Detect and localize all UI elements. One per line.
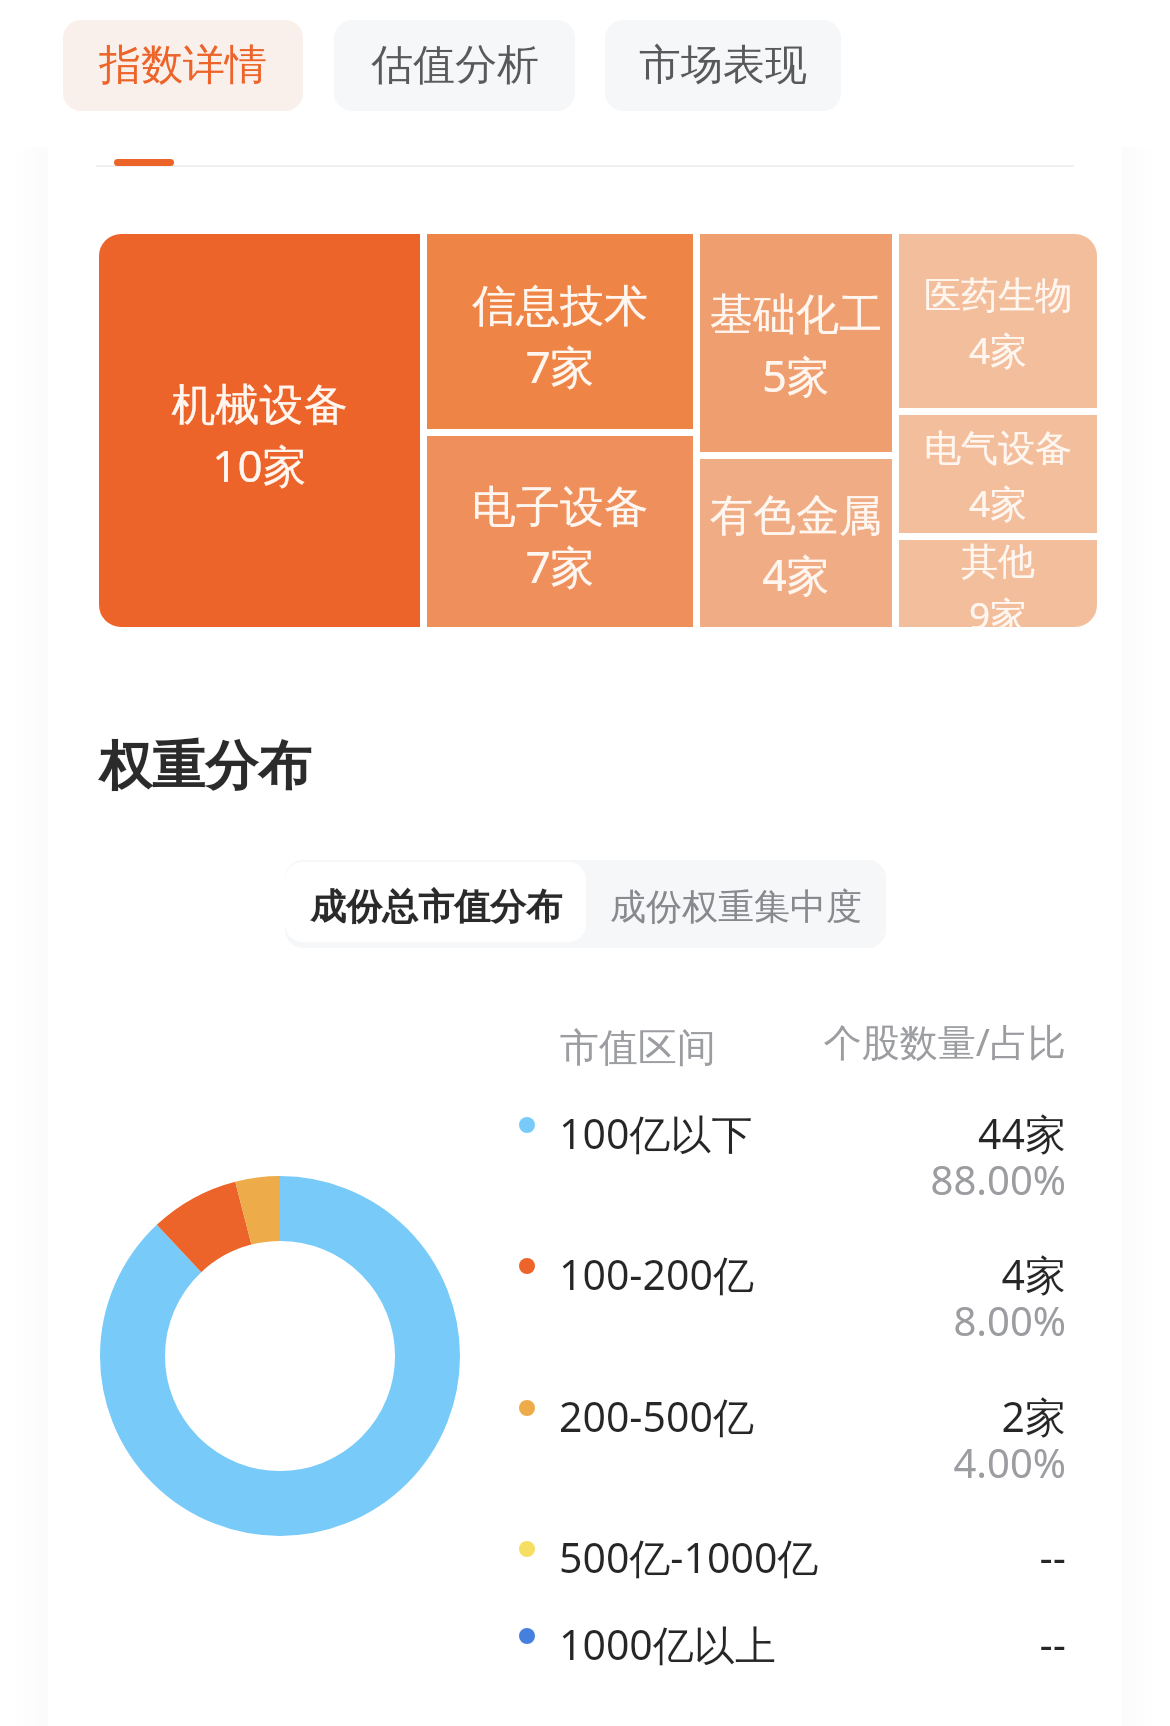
staticText: 4.00%	[746, 1435, 1066, 1489]
button[interactable]: 估值分析	[334, 20, 575, 111]
staticText: 4家	[746, 1246, 1066, 1302]
button[interactable]: 成份权重集中度	[586, 862, 886, 942]
staticText: 4家	[899, 477, 1097, 528]
staticText: --	[746, 1616, 1066, 1672]
staticText: 7家	[427, 536, 693, 596]
button[interactable]	[508, 1246, 1074, 1356]
staticText: 成份权重集中度	[610, 884, 862, 929]
staticText: 200-500亿	[559, 1388, 754, 1444]
button[interactable]: 电子设备	[427, 436, 693, 627]
staticText: 成份总市值分布	[310, 884, 562, 929]
staticText: 4家	[899, 324, 1097, 375]
staticText: 88.00%	[746, 1152, 1066, 1206]
staticText: 100-200亿	[559, 1246, 754, 1302]
button[interactable]: 市场表现	[605, 20, 841, 111]
staticText: 2家	[746, 1388, 1066, 1444]
staticText: 基础化工	[700, 288, 892, 342]
staticText: 权重分布	[99, 733, 311, 800]
staticText: --	[746, 1529, 1066, 1585]
staticText: 电子设备	[427, 480, 693, 535]
staticText: 500亿-1000亿	[559, 1529, 819, 1585]
staticText: 指数详情	[99, 39, 267, 92]
staticText: 10家	[99, 435, 420, 495]
button[interactable]: 电气设备	[899, 415, 1097, 533]
other: 成份总市值分布饼图	[100, 1176, 460, 1536]
button[interactable]: 成份总市值分布	[285, 862, 586, 942]
button[interactable]	[508, 1388, 1074, 1498]
staticText: 市场表现	[639, 39, 807, 92]
staticText: 8.00%	[746, 1293, 1066, 1347]
button[interactable]: 基础化工	[700, 234, 892, 452]
staticText: 5家	[700, 346, 892, 405]
staticText: 机械设备	[99, 378, 420, 433]
staticText: 1000亿以上	[559, 1616, 776, 1672]
button[interactable]	[508, 1616, 1074, 1676]
staticText: 44家	[746, 1105, 1066, 1161]
button[interactable]: 指数详情	[63, 20, 303, 111]
staticText: 9家	[899, 589, 1097, 627]
staticText: 4家	[700, 545, 892, 604]
staticText: 市值区间	[560, 1023, 716, 1072]
button[interactable]: 机械设备	[99, 234, 420, 627]
button[interactable]	[508, 1105, 1074, 1215]
staticText: 估值分析	[371, 39, 539, 92]
staticText: 有色金属	[700, 489, 892, 543]
button[interactable]	[508, 1529, 1074, 1589]
button[interactable]: 有色金属	[700, 459, 892, 627]
staticText: 100亿以下	[559, 1105, 753, 1161]
button[interactable]: 信息技术	[427, 234, 693, 429]
staticText: 7家	[427, 336, 693, 396]
staticText: 信息技术	[427, 279, 693, 334]
staticText: 其他	[899, 540, 1097, 585]
staticText: 个股数量/占比	[746, 1015, 1066, 1067]
staticText: 电气设备	[899, 425, 1097, 472]
staticText: 医药生物	[899, 272, 1097, 319]
button[interactable]: 医药生物	[899, 234, 1097, 408]
button[interactable]: 其他	[899, 540, 1097, 627]
